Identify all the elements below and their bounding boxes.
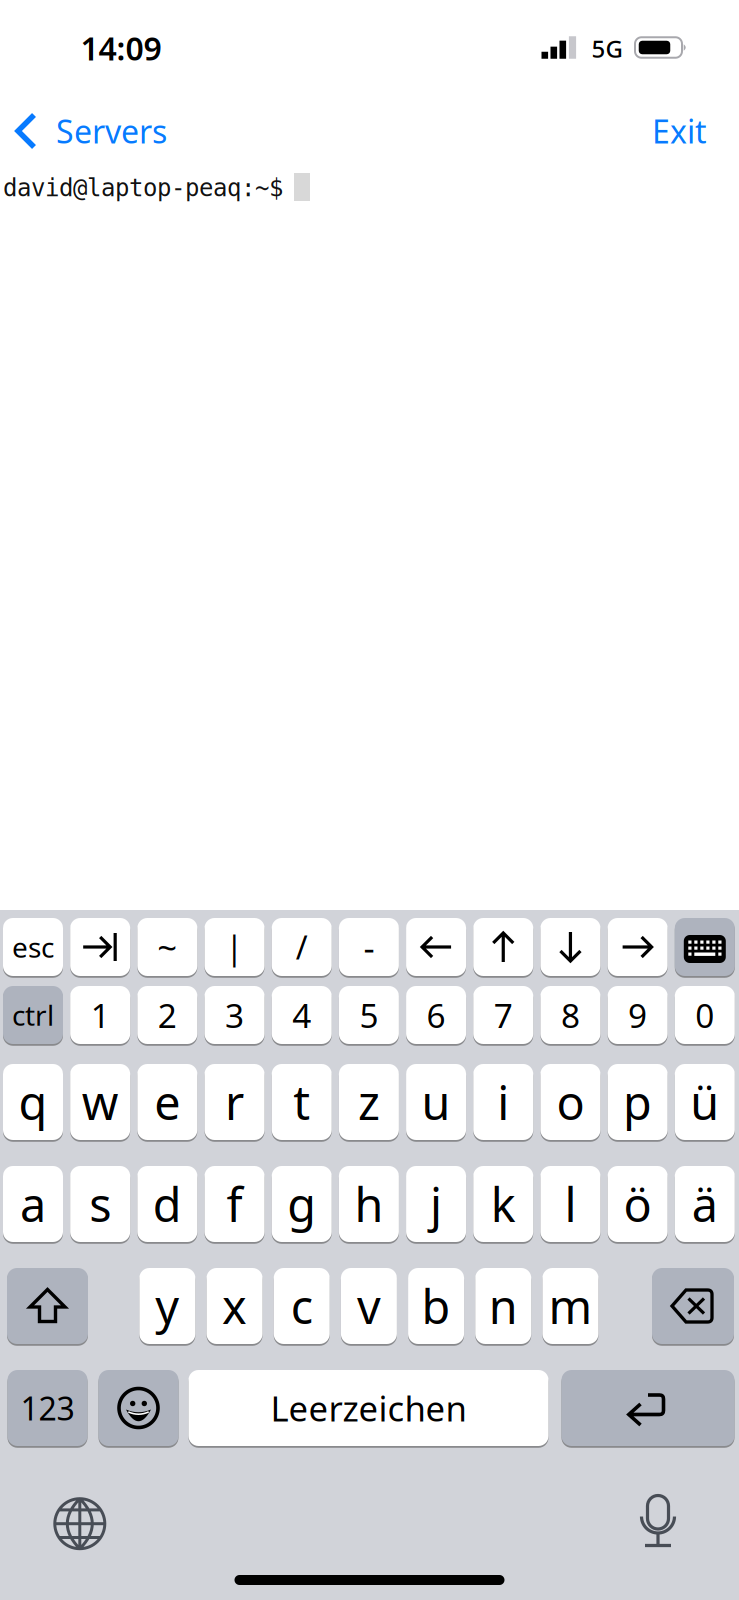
staticText: c [291,1275,313,1337]
staticText: x [222,1275,247,1337]
button[interactable]: q [3,1063,63,1141]
button[interactable]: Delete [652,1267,734,1345]
staticText: Exit [652,110,707,152]
button[interactable]: - [339,917,399,977]
button[interactable]: k [473,1165,533,1243]
staticText: a [20,1173,46,1235]
staticText: 6 [427,993,446,1037]
button[interactable]: Right arrow [608,917,668,977]
staticText: esc [12,928,54,966]
button[interactable]: Down arrow [540,917,600,977]
button[interactable]: l [540,1165,600,1243]
staticText: q [18,1071,47,1133]
button[interactable]: 4 [272,985,332,1045]
button[interactable]: c [274,1267,330,1345]
button[interactable]: Tab [70,917,130,977]
staticText: 7 [494,993,513,1037]
staticText: k [491,1173,516,1235]
staticText: p [623,1071,652,1133]
button[interactable]: h [339,1165,399,1243]
button[interactable]: 2 [137,985,197,1045]
staticText: 8 [561,993,580,1037]
button[interactable]: ö [608,1165,668,1243]
staticText: f [226,1173,242,1235]
button[interactable]: 1 [70,985,130,1045]
button[interactable]: m [542,1267,598,1345]
staticText: 5 [359,993,378,1037]
staticText: ~ [157,924,177,970]
staticText: 5G [591,33,622,64]
button[interactable]: Left arrow [406,917,466,977]
staticText: ctrl [12,996,54,1034]
button[interactable]: Dictation [637,1493,678,1549]
button[interactable]: i [473,1063,533,1141]
staticText: t [293,1071,310,1133]
button[interactable]: o [540,1063,600,1141]
staticText: e [154,1071,180,1133]
button[interactable]: u [406,1063,466,1141]
button[interactable]: 0 [675,985,735,1045]
staticText: 0 [695,993,714,1037]
staticText: n [489,1275,518,1337]
button[interactable]: w [70,1063,130,1141]
button[interactable]: Emoji [98,1369,178,1447]
staticText: ä [692,1173,718,1235]
staticText: Servers [56,110,167,152]
button[interactable]: Next keyboard [52,1496,108,1552]
staticText: b [422,1275,451,1337]
button[interactable]: r [204,1063,264,1141]
staticText: y [155,1275,179,1337]
button[interactable]: b [408,1267,464,1345]
staticText: Leerzeichen [270,1385,466,1431]
button[interactable]: Leerzeichen [188,1369,548,1447]
staticText: r [225,1071,244,1133]
button[interactable]: / [272,917,332,977]
button[interactable]: f [204,1165,264,1243]
staticText: o [556,1071,584,1133]
button[interactable]: d [137,1165,197,1243]
staticText: - [363,924,374,970]
button[interactable]: Back to Servers [0,110,167,152]
button[interactable]: Dismiss keyboard [675,917,735,977]
button[interactable]: Up arrow [473,917,533,977]
button[interactable]: t [272,1063,332,1141]
staticText: v [357,1275,381,1337]
button[interactable]: 7 [473,985,533,1045]
button[interactable]: n [475,1267,531,1345]
button[interactable]: 8 [540,985,600,1045]
staticText: 4 [292,993,311,1037]
button[interactable]: Shift [7,1267,88,1345]
staticText: | [225,926,243,968]
staticText: ü [690,1071,719,1133]
button[interactable]: Exit [652,110,707,152]
button[interactable]: s [70,1165,130,1243]
staticText: s [89,1173,111,1235]
button[interactable]: 5 [339,985,399,1045]
button[interactable]: v [341,1267,397,1345]
staticText: z [358,1071,380,1133]
button[interactable]: z [339,1063,399,1141]
button[interactable]: ü [675,1063,735,1141]
staticText: 123 [20,1387,74,1429]
button[interactable]: 9 [608,985,668,1045]
staticText: l [564,1173,576,1235]
staticText: 1 [91,993,110,1037]
button[interactable]: esc [3,917,63,977]
button[interactable]: ctrl [3,985,63,1045]
button[interactable]: p [608,1063,668,1141]
button[interactable]: | [204,917,264,977]
button[interactable]: x [206,1267,262,1345]
button[interactable]: Return [561,1369,734,1447]
button[interactable]: a [3,1165,63,1243]
button[interactable]: 3 [204,985,264,1045]
button[interactable]: y [139,1267,195,1345]
button[interactable]: g [272,1165,332,1243]
staticText: 14:09 [80,27,161,69]
button[interactable]: 6 [406,985,466,1045]
button[interactable]: ä [675,1165,735,1243]
button[interactable]: e [137,1063,197,1141]
button[interactable]: j [406,1165,466,1243]
staticText: w [82,1071,119,1133]
button[interactable]: 123 [7,1369,87,1447]
button[interactable]: ~ [137,917,197,977]
